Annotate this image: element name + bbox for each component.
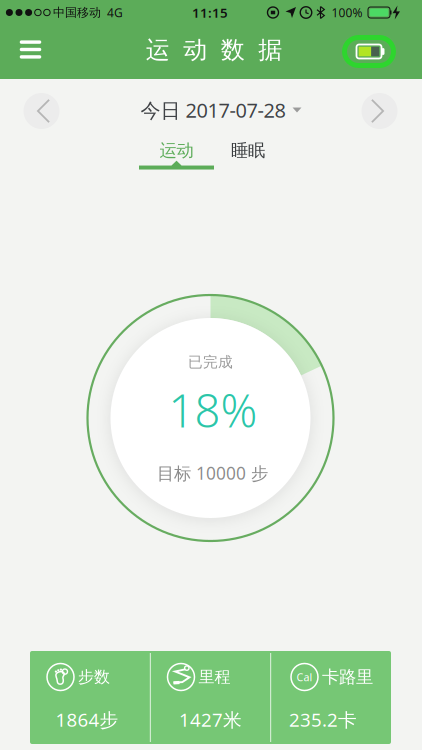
button[interactable]: Previous day (23, 93, 59, 129)
staticText: 已完成 (188, 353, 233, 371)
staticText: 目标 10000 步 (157, 461, 268, 484)
staticText: 今日 2017-07-28 (140, 97, 285, 123)
staticText: 18% (168, 380, 257, 440)
staticText: 1427米 (179, 707, 242, 732)
button[interactable]: 运动 (139, 135, 214, 165)
button[interactable]: Next day (361, 93, 397, 129)
staticText: 卡路里 (322, 666, 373, 688)
staticText: 睡眠 (231, 140, 265, 161)
staticText: 11:15 (192, 4, 228, 21)
button[interactable]: 今日 2017-07-28 (140, 97, 301, 123)
button[interactable]: Menu (8, 27, 52, 71)
button[interactable]: 睡眠 (218, 135, 278, 165)
staticText: 4G (107, 4, 123, 20)
staticText: 中国移动 (53, 5, 101, 20)
button[interactable]: Device battery (340, 31, 398, 71)
staticText: Cal (296, 670, 312, 684)
staticText: 步数 (78, 667, 110, 687)
staticText: 里程 (198, 667, 230, 687)
staticText: 运动 (159, 140, 193, 161)
staticText: 1864步 (55, 707, 118, 732)
staticText: 运动数据 (146, 35, 282, 65)
staticText: 235.2卡 (289, 707, 357, 732)
staticText: 100% (331, 4, 362, 20)
